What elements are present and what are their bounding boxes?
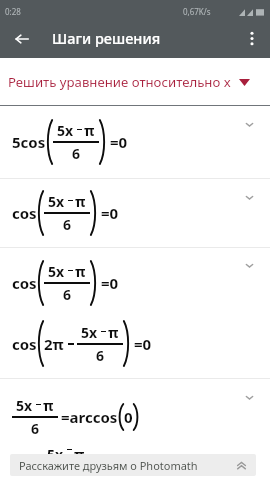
staticText: =arccos <box>61 407 118 427</box>
staticText: Шаги решения <box>52 28 161 48</box>
staticText: cos <box>12 203 37 223</box>
staticText: 0:28 <box>5 6 21 17</box>
staticText: 2π <box>44 334 64 354</box>
staticText: 6 <box>63 285 72 304</box>
staticText: 6 <box>96 346 105 365</box>
staticText: =0 <box>134 334 152 354</box>
button[interactable]: Решить уравнение относительно x <box>0 58 270 105</box>
staticText: 5x <box>57 121 74 140</box>
staticText: 5x <box>16 396 33 415</box>
button[interactable]: Back <box>0 22 44 58</box>
staticText: π <box>84 121 95 140</box>
staticText: 5x <box>81 323 98 342</box>
staticText: 6 <box>31 419 40 438</box>
button[interactable]: cos <box>0 248 270 378</box>
button[interactable]: Расскажите друзьям о Photomath <box>10 454 256 476</box>
staticText: cos <box>12 334 37 354</box>
staticText: π <box>43 396 54 415</box>
staticText: 0 <box>124 407 133 427</box>
button[interactable]: 5cos <box>0 106 270 178</box>
staticText: 5x <box>47 445 64 455</box>
staticText: cos <box>12 273 37 293</box>
staticText: 0,67K/s <box>183 6 211 17</box>
staticText: =0 <box>110 132 128 152</box>
staticText: 5x <box>48 192 65 211</box>
button[interactable]: More options <box>234 22 270 58</box>
staticText: π <box>75 192 86 211</box>
staticText: 5cos <box>12 132 46 152</box>
staticText: 6 <box>72 144 81 163</box>
staticText: =0 <box>101 203 119 223</box>
staticText: π <box>108 323 119 342</box>
staticText: 5x <box>48 262 65 281</box>
staticText: Расскажите друзьям о Photomath <box>19 458 198 473</box>
button[interactable]: cos <box>0 179 270 247</box>
staticText: 6 <box>63 215 72 234</box>
button[interactable]: 5x <box>0 379 270 480</box>
staticText: Решить уравнение относительно x <box>8 73 231 91</box>
staticText: π <box>74 445 85 455</box>
staticText: =0 <box>101 273 119 293</box>
staticText: π <box>75 262 86 281</box>
